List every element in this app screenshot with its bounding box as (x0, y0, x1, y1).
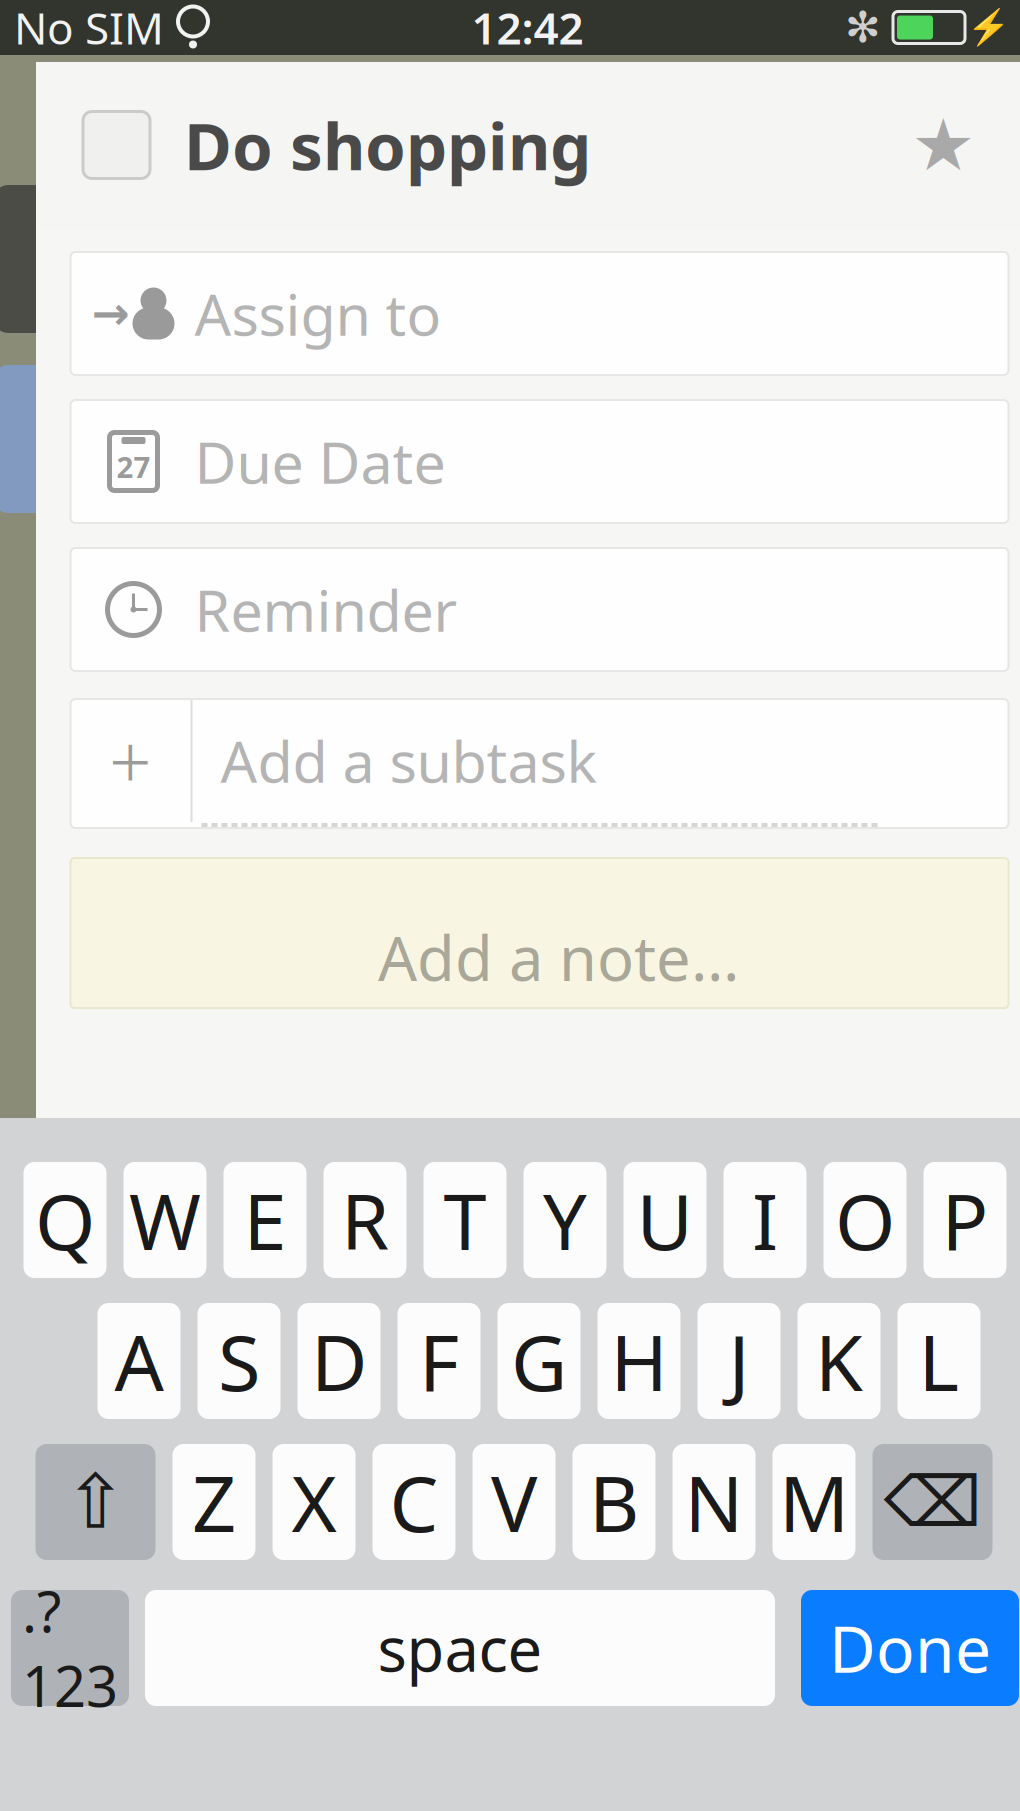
staticText: S (218, 1310, 260, 1412)
staticText: 27 (116, 447, 150, 486)
button[interactable]: M (772, 1444, 855, 1560)
staticText: Add a note... (378, 917, 739, 998)
button[interactable]: J (697, 1303, 780, 1419)
button[interactable]: V (472, 1444, 555, 1560)
button[interactable]: D (297, 1303, 380, 1419)
button[interactable]: Complete task (36, 87, 170, 202)
staticText: T (443, 1169, 486, 1271)
staticText: I (752, 1169, 778, 1271)
button[interactable]: I (723, 1162, 806, 1278)
staticText: V (491, 1451, 537, 1553)
staticText: U (636, 1169, 693, 1271)
button[interactable]: + (47, 671, 1008, 828)
staticText: K (815, 1310, 863, 1412)
button[interactable]: Add a note... (47, 828, 1008, 1008)
button[interactable]: N (672, 1444, 755, 1560)
staticText: X (291, 1451, 336, 1553)
button[interactable]: G (497, 1303, 580, 1419)
staticText: O (835, 1169, 895, 1271)
staticText: J (728, 1310, 749, 1412)
button[interactable]: Favorite (885, 80, 1020, 210)
button[interactable]: T (423, 1162, 506, 1278)
staticText: ⌫ (883, 1463, 981, 1541)
staticText: P (941, 1169, 988, 1271)
button[interactable]: → (47, 228, 1008, 375)
button[interactable]: K (797, 1303, 880, 1419)
staticText: → (91, 288, 129, 339)
button[interactable]: X (272, 1444, 355, 1560)
button[interactable]: B (572, 1444, 655, 1560)
button[interactable]: C (372, 1444, 455, 1560)
button[interactable]: F (397, 1303, 480, 1419)
staticText: ★ (911, 104, 976, 186)
button[interactable]: 27 (47, 375, 1008, 523)
staticText: .?123 (22, 1574, 118, 1722)
button[interactable]: Reminder (47, 523, 1008, 671)
staticText: M (779, 1451, 849, 1553)
staticText: G (511, 1310, 567, 1412)
button[interactable]: .?123 (11, 1590, 129, 1706)
staticText: R (341, 1169, 389, 1271)
staticText: C (389, 1451, 438, 1553)
staticText: N (684, 1451, 743, 1553)
button[interactable]: Delete (872, 1444, 992, 1560)
staticText: W (129, 1169, 201, 1271)
staticText: A (114, 1310, 163, 1412)
staticText: D (311, 1310, 367, 1412)
button[interactable]: P (923, 1162, 1006, 1278)
staticText: ✻ (845, 3, 881, 52)
staticText: E (243, 1169, 286, 1271)
staticText: space (377, 1607, 542, 1689)
staticText: B (589, 1451, 639, 1553)
staticText: ⚡ (967, 8, 1010, 47)
button[interactable]: O (823, 1162, 906, 1278)
button[interactable]: Z (172, 1444, 255, 1560)
button[interactable]: Done (801, 1590, 1019, 1706)
staticText: Done (829, 1605, 991, 1690)
staticText: Reminder (194, 571, 457, 647)
button[interactable]: S (197, 1303, 280, 1419)
button[interactable]: L (897, 1303, 980, 1419)
staticText: Y (543, 1169, 587, 1271)
staticText: Z (192, 1451, 236, 1553)
staticText: ⇧ (64, 1460, 127, 1544)
staticText: L (918, 1310, 959, 1412)
button[interactable]: Q (23, 1162, 106, 1278)
staticText: 12:42 (471, 0, 583, 57)
staticText: + (109, 711, 152, 810)
button[interactable]: Shift (35, 1444, 155, 1560)
staticText: No SIM (14, 0, 164, 57)
staticText: F (419, 1310, 459, 1412)
button[interactable]: U (623, 1162, 706, 1278)
button[interactable]: W (123, 1162, 206, 1278)
button[interactable]: A (97, 1303, 180, 1419)
staticText: Add a subtask (220, 722, 597, 798)
staticText: Assign to (194, 275, 441, 351)
staticText: H (610, 1310, 667, 1412)
button[interactable]: Y (523, 1162, 606, 1278)
button[interactable]: space (145, 1590, 775, 1706)
button[interactable]: E (223, 1162, 306, 1278)
button[interactable]: H (597, 1303, 680, 1419)
staticText: Q (35, 1169, 95, 1271)
staticText: Do shopping (184, 102, 591, 188)
staticText: Due Date (194, 423, 445, 499)
button[interactable]: R (323, 1162, 406, 1278)
